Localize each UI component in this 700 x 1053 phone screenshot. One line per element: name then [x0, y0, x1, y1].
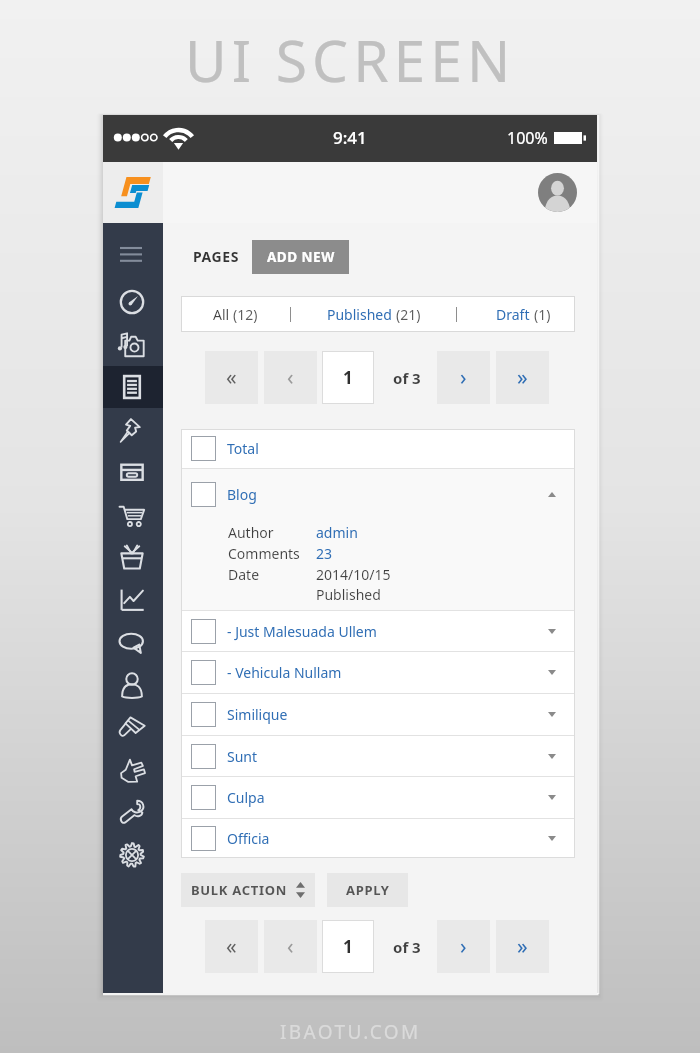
button[interactable]: Analytics: [103, 579, 163, 621]
button[interactable]: Cards: [103, 451, 163, 493]
staticText: admin: [316, 523, 358, 542]
button[interactable]: ADD NEW: [252, 240, 349, 274]
button[interactable]: Comments: [103, 621, 163, 663]
staticText: IBAOTU.COM: [280, 1019, 421, 1045]
staticText: Total: [227, 439, 259, 458]
button[interactable]: Shop: [103, 494, 163, 536]
button[interactable]: Select row: [191, 777, 556, 818]
button[interactable]: Media: [103, 324, 163, 366]
button[interactable]: Appearance: [103, 706, 163, 748]
staticText: »: [517, 363, 528, 392]
staticText: ‹: [287, 363, 294, 392]
staticText: - Vehicula Nullam: [227, 663, 342, 682]
staticText: ADD NEW: [267, 248, 335, 266]
staticText: Officia: [227, 829, 270, 848]
button[interactable]: Select row: [191, 785, 216, 810]
button[interactable]: Account: [538, 173, 577, 212]
button[interactable]: Pins: [103, 409, 163, 451]
button[interactable]: Published: [291, 296, 456, 332]
button[interactable]: Pages: [103, 366, 163, 408]
staticText: Author: [228, 523, 274, 542]
button[interactable]: Home: [103, 162, 163, 223]
staticText: Sunt: [227, 747, 258, 766]
button[interactable]: Tools: [103, 791, 163, 833]
staticText: Published: [316, 585, 381, 602]
button[interactable]: Select row: [191, 736, 556, 776]
staticText: PAGES: [193, 247, 240, 266]
button[interactable]: Select row: [191, 744, 216, 769]
button[interactable]: Select row: [191, 652, 556, 693]
staticText: Comments: [228, 544, 300, 563]
staticText: «: [226, 363, 237, 392]
staticText: 9:41: [333, 126, 367, 149]
button[interactable]: Page navigation: [437, 351, 490, 404]
button[interactable]: APPLY: [327, 873, 408, 907]
staticText: APPLY: [346, 881, 390, 899]
staticText: Culpa: [227, 788, 265, 807]
staticText: Published: [327, 305, 396, 324]
button[interactable]: Select row: [191, 660, 216, 685]
staticText: BULK ACTION: [191, 881, 287, 899]
button[interactable]: Select row: [191, 469, 556, 519]
button[interactable]: Page navigation: [496, 351, 549, 404]
staticText: 1: [343, 366, 353, 389]
staticText: (1): [534, 305, 551, 324]
staticText: ‹: [287, 932, 294, 961]
button[interactable]: Select row: [191, 611, 556, 651]
button[interactable]: Select row: [191, 826, 216, 851]
button[interactable]: Page navigation: [496, 920, 549, 973]
staticText: - Just Malesuada Ullem: [227, 622, 377, 641]
staticText: ›: [460, 932, 467, 961]
button[interactable]: BULK ACTION: [181, 873, 315, 907]
button[interactable]: 1: [322, 920, 374, 973]
staticText: All: [213, 305, 233, 324]
staticText: «: [226, 932, 237, 961]
staticText: (21): [396, 305, 421, 324]
staticText: of 3: [393, 937, 421, 957]
staticText: Similique: [227, 705, 288, 724]
staticText: 23: [316, 544, 333, 563]
staticText: Blog: [227, 485, 257, 504]
button[interactable]: Page navigation: [437, 920, 490, 973]
staticText: of 3: [393, 368, 421, 388]
staticText: 100%: [507, 127, 548, 149]
button[interactable]: Select row: [191, 429, 556, 468]
button[interactable]: Select row: [191, 819, 556, 858]
button[interactable]: Page navigation: [205, 920, 258, 973]
button[interactable]: Draft: [457, 296, 575, 332]
button[interactable]: Menu: [103, 236, 163, 270]
button[interactable]: Page navigation: [264, 920, 317, 973]
button[interactable]: All: [181, 296, 290, 332]
staticText: »: [517, 932, 528, 961]
button[interactable]: Dashboard: [103, 281, 163, 323]
button[interactable]: Orders: [103, 536, 163, 578]
button[interactable]: Select row: [191, 694, 556, 735]
button[interactable]: Select row: [191, 619, 216, 644]
staticText: ›: [460, 363, 467, 392]
staticText: Draft: [496, 305, 534, 324]
staticText: UI SCREEN: [185, 21, 516, 99]
button[interactable]: Plugins: [103, 749, 163, 791]
staticText: Date: [228, 565, 260, 584]
button[interactable]: Settings: [103, 834, 163, 876]
staticText: 1: [343, 935, 353, 958]
button[interactable]: Users: [103, 664, 163, 706]
button[interactable]: Select row: [191, 436, 216, 461]
button[interactable]: Select row: [191, 702, 216, 727]
button[interactable]: Page navigation: [264, 351, 317, 404]
button[interactable]: 1: [322, 351, 374, 404]
button[interactable]: Select row: [191, 482, 216, 507]
button[interactable]: Page navigation: [205, 351, 258, 404]
staticText: (12): [233, 305, 258, 324]
staticText: 2014/10/15: [316, 565, 391, 584]
